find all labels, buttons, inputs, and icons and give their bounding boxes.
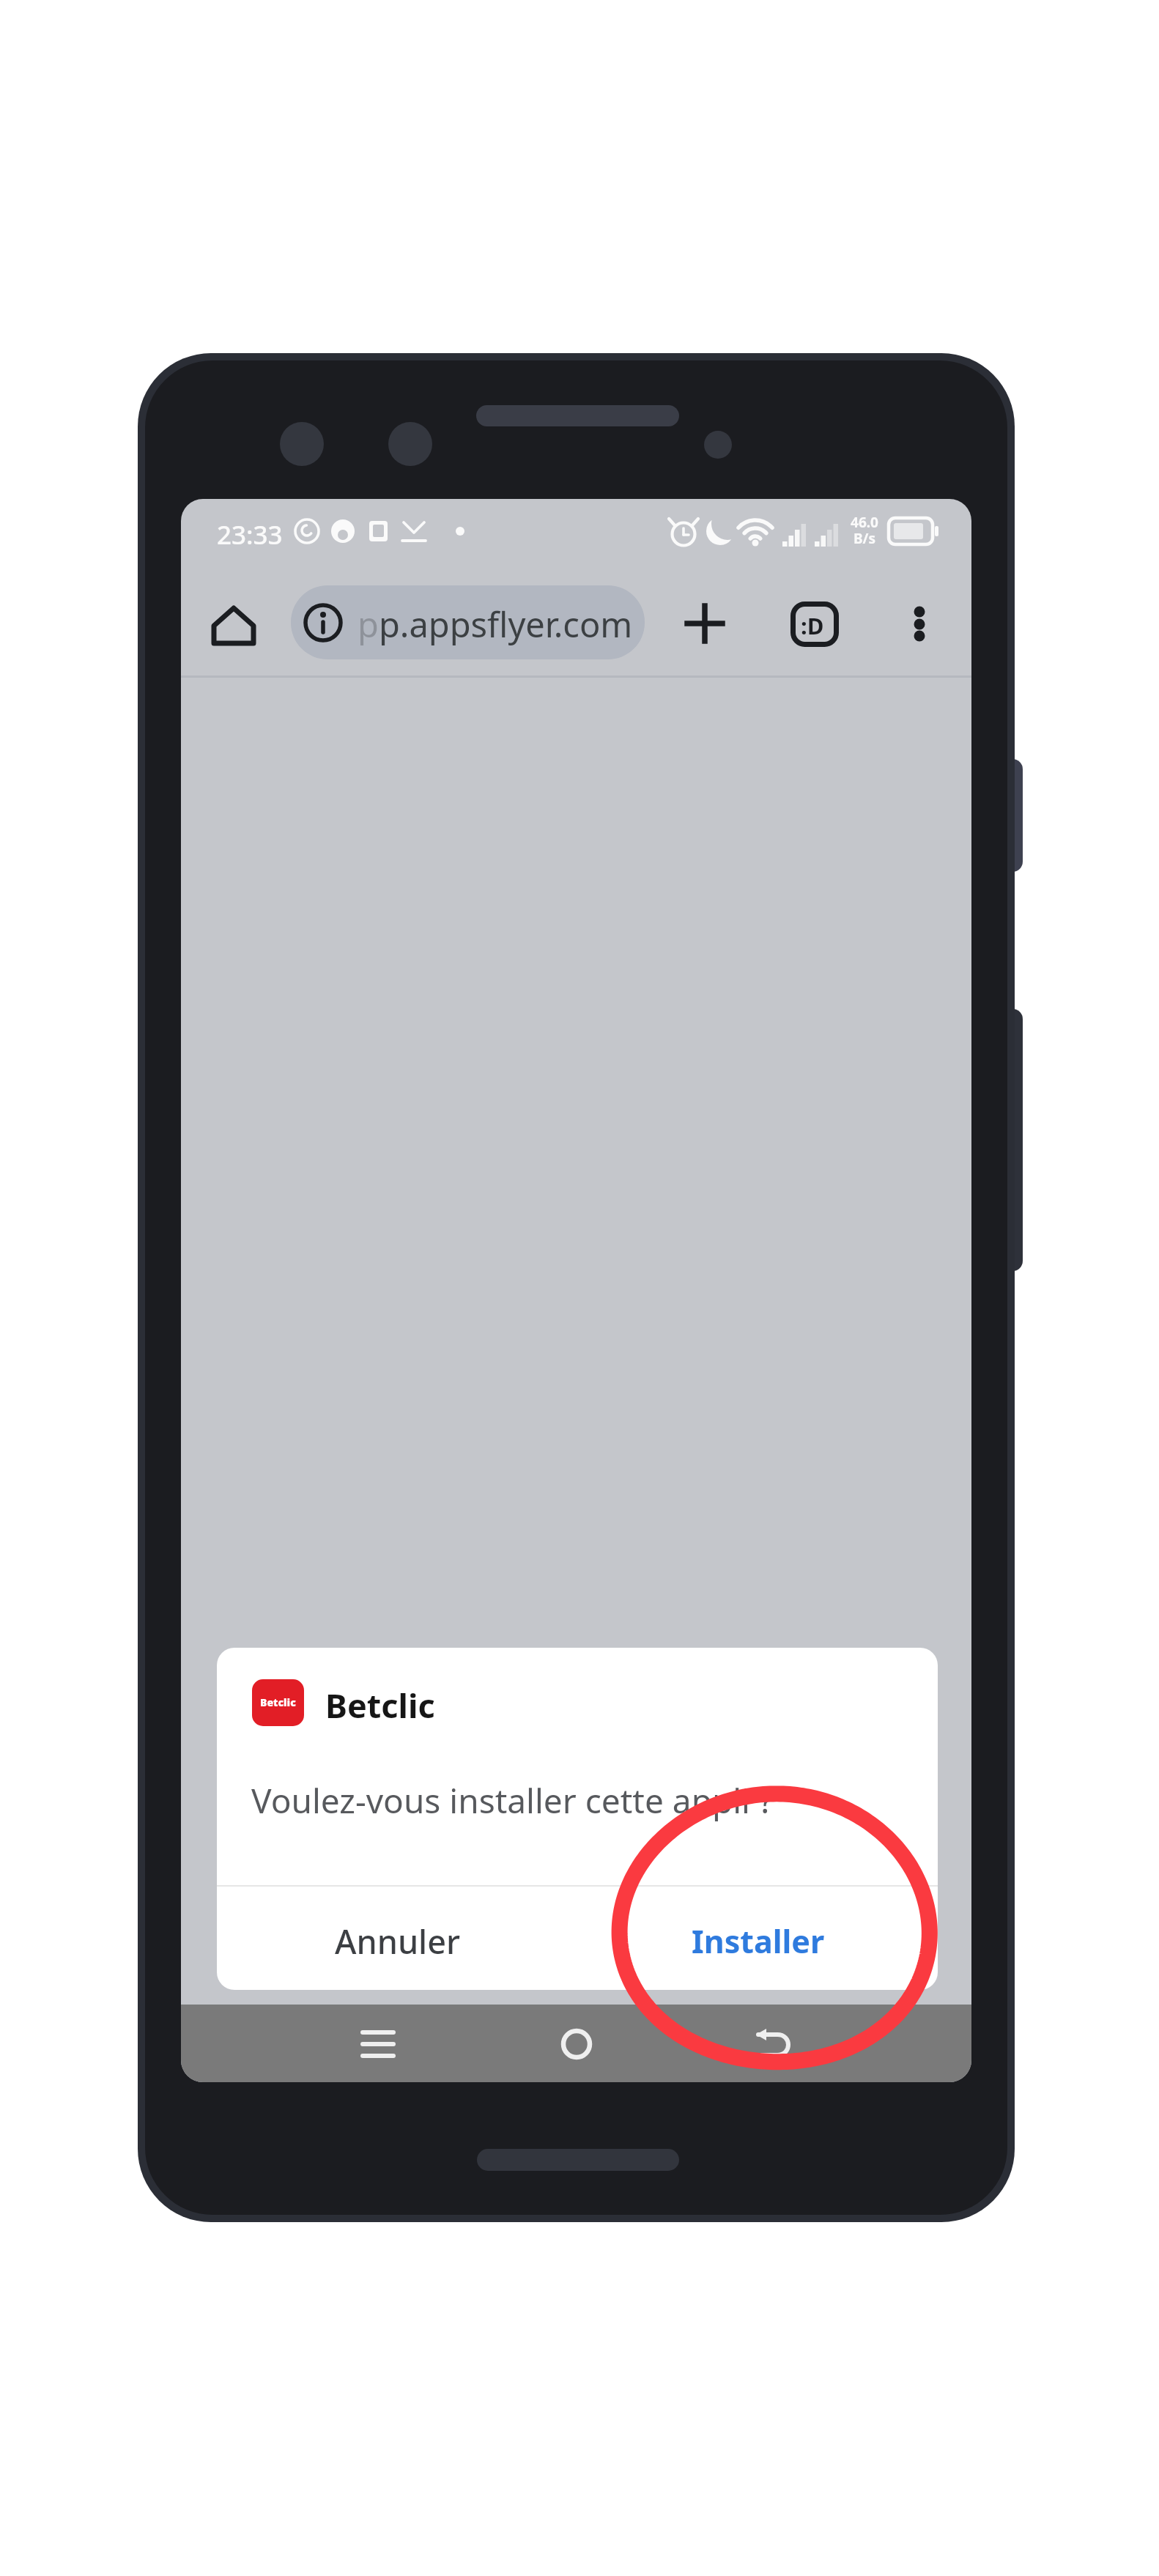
- staticText: 46.0: [846, 513, 883, 532]
- button[interactable]: New tab: [672, 591, 738, 656]
- staticText: B/s: [846, 529, 883, 548]
- button[interactable]: Home: [199, 591, 269, 656]
- button[interactable]: Tabs: [790, 602, 839, 647]
- button[interactable]: Installer: [685, 1900, 832, 1981]
- button[interactable]: Back: [729, 2015, 817, 2073]
- staticText: Betclic: [325, 1683, 435, 1728]
- button[interactable]: More options: [897, 593, 941, 654]
- staticText: Voulez-vous installer cette appli ?: [251, 1777, 774, 1824]
- staticText: Annuler: [335, 1919, 461, 1964]
- button[interactable]: Home: [533, 2015, 621, 2073]
- staticText: :D: [801, 610, 824, 641]
- button[interactable]: Annuler: [325, 1900, 471, 1981]
- staticText: pp.appsflyer.com: [358, 601, 633, 648]
- staticText: Betclic: [260, 1695, 296, 1709]
- button[interactable]: pp.appsflyer.com: [291, 585, 645, 659]
- staticText: 23:33: [217, 517, 283, 552]
- button[interactable]: Recent apps: [334, 2015, 422, 2073]
- staticText: Installer: [692, 1920, 825, 1963]
